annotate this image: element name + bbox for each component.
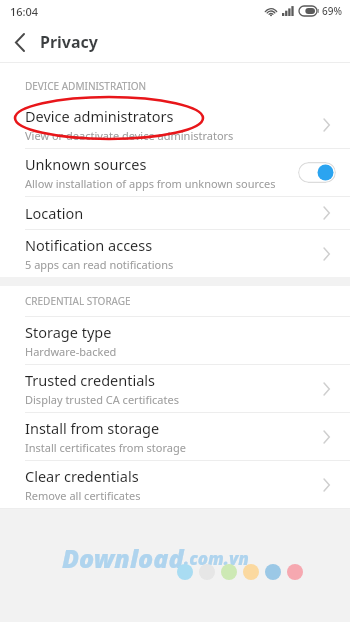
staticText: Install certificates from storage (25, 440, 186, 455)
staticText: Privacy (40, 31, 98, 53)
staticText: 69% (322, 4, 342, 18)
staticText: Install from storage (25, 418, 160, 438)
staticText: Display trusted CA certificates (25, 392, 179, 407)
button[interactable]: Unknown sources toggle (298, 162, 336, 183)
staticText: Storage type (25, 322, 112, 342)
staticText: CREDENTIAL STORAGE (25, 294, 131, 308)
staticText: Device administrators (25, 106, 174, 126)
staticText: Allow installation of apps from unknown … (25, 176, 276, 191)
staticText: Trusted credentials (25, 370, 156, 390)
button[interactable]: Location (0, 197, 350, 229)
staticText: 5 apps can read notifications (25, 257, 174, 272)
button[interactable]: Unknown sources (0, 149, 350, 196)
button[interactable]: Storage type (0, 317, 350, 364)
staticText: Hardware-backed (25, 344, 117, 359)
staticText: 16:04 (10, 4, 39, 19)
staticText: Clear credentials (25, 466, 139, 486)
button[interactable]: Device administrators (0, 101, 350, 148)
button[interactable]: Back (0, 22, 40, 62)
staticText: Notification access (25, 235, 153, 255)
button[interactable]: Trusted credentials (0, 365, 350, 412)
button[interactable]: Install from storage (0, 413, 350, 460)
staticText: DEVICE ADMINISTRATION (25, 79, 147, 93)
staticText: Download (62, 541, 184, 575)
staticText: Remove all certificates (25, 488, 141, 503)
staticText: .com.vn (184, 547, 249, 570)
button[interactable]: Notification access (0, 230, 350, 277)
staticText: View or deactivate device administrators (25, 128, 234, 143)
button[interactable]: Clear credentials (0, 461, 350, 508)
staticText: Location (25, 203, 84, 223)
staticText: Unknown sources (25, 154, 147, 174)
